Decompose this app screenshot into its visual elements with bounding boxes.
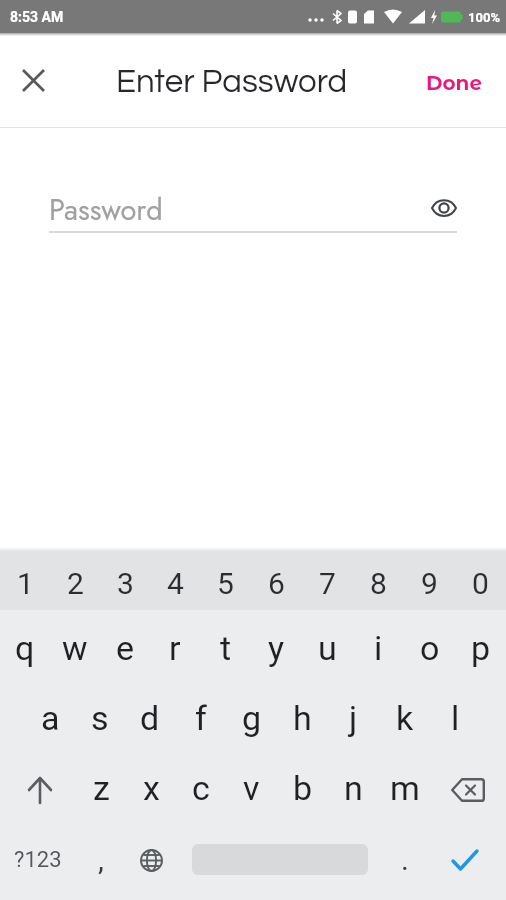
button[interactable]: e [100,610,150,680]
button[interactable]: b [277,750,328,820]
staticText: j [349,698,358,738]
button[interactable]: . [379,820,430,891]
button[interactable]: q [0,610,50,680]
button[interactable] [430,750,506,820]
button[interactable]: h [277,680,328,750]
button[interactable]: 1 [0,551,50,610]
button[interactable]: 3 [100,551,150,610]
button[interactable]: Password [49,189,457,231]
staticText: m [390,768,420,808]
button[interactable]: , [76,820,126,891]
staticText: t [220,628,232,668]
button[interactable] [431,199,457,217]
staticText: 6 [268,566,285,601]
staticText: r [169,628,181,668]
button[interactable]: c [176,750,226,820]
button[interactable]: r [150,610,200,680]
button[interactable] [14,61,52,99]
staticText: 8:53 AM [10,9,64,25]
button[interactable]: a [25,680,75,750]
staticText: h [293,698,312,738]
button[interactable]: x [126,750,176,820]
button[interactable]: f [175,680,226,750]
button[interactable]: n [328,750,379,820]
staticText: ?123 [14,847,62,873]
staticText: 3 [117,566,134,601]
button[interactable]: y [251,610,302,680]
staticText: Password [49,189,163,231]
button[interactable]: d [125,680,175,750]
button[interactable]: l [430,680,481,750]
staticText: 1 [17,566,34,601]
button[interactable]: 7 [302,551,353,610]
button[interactable]: k [379,680,430,750]
staticText: . [401,842,409,877]
staticText: k [396,698,414,738]
button[interactable]: 2 [50,551,100,610]
staticText: b [293,768,313,808]
button[interactable] [430,820,506,891]
staticText: y [268,628,285,668]
button[interactable] [126,820,177,891]
button[interactable]: u [302,610,353,680]
staticText: o [420,628,440,668]
staticText: 5 [217,566,234,601]
staticText: Enter Password [116,65,348,99]
staticText: q [15,628,35,668]
button[interactable]: o [404,610,455,680]
staticText: 7 [319,566,336,601]
staticText: x [143,768,160,808]
button[interactable]: s [75,680,125,750]
staticText: , [98,842,104,877]
button[interactable]: t [200,610,251,680]
button[interactable]: 8 [353,551,404,610]
button[interactable]: ?123 [0,820,76,891]
button[interactable]: g [226,680,277,750]
button[interactable]: 6 [251,551,302,610]
staticText: n [344,768,363,808]
staticText: Done [426,71,483,95]
staticText: 8 [370,566,387,601]
staticText: g [242,698,262,738]
staticText: i [374,628,383,668]
staticText: p [471,628,491,668]
staticText: s [91,698,109,738]
staticText: e [116,628,135,668]
staticText: 4 [167,566,184,601]
button[interactable]: v [226,750,277,820]
staticText: 0 [472,566,489,601]
button[interactable]: 4 [150,551,200,610]
staticText: 9 [421,566,438,601]
staticText: z [93,768,110,808]
button[interactable]: i [353,610,404,680]
staticText: v [243,768,260,808]
button[interactable]: w [50,610,100,680]
button[interactable]: 9 [404,551,455,610]
button[interactable]: j [328,680,379,750]
staticText: w [62,628,88,668]
staticText: d [140,698,160,738]
staticText: l [451,698,460,738]
button[interactable]: Done [420,62,489,98]
staticText: c [192,768,210,808]
button[interactable]: 0 [455,551,506,610]
staticText: 100% [468,10,500,25]
staticText: a [41,698,60,738]
staticText: u [318,628,337,668]
button[interactable]: z [76,750,126,820]
staticText: f [195,698,207,738]
button[interactable]: p [455,610,506,680]
staticText: 2 [67,566,84,601]
button[interactable]: 5 [200,551,251,610]
button[interactable] [0,750,76,820]
button[interactable] [177,820,379,891]
button[interactable]: m [379,750,430,820]
